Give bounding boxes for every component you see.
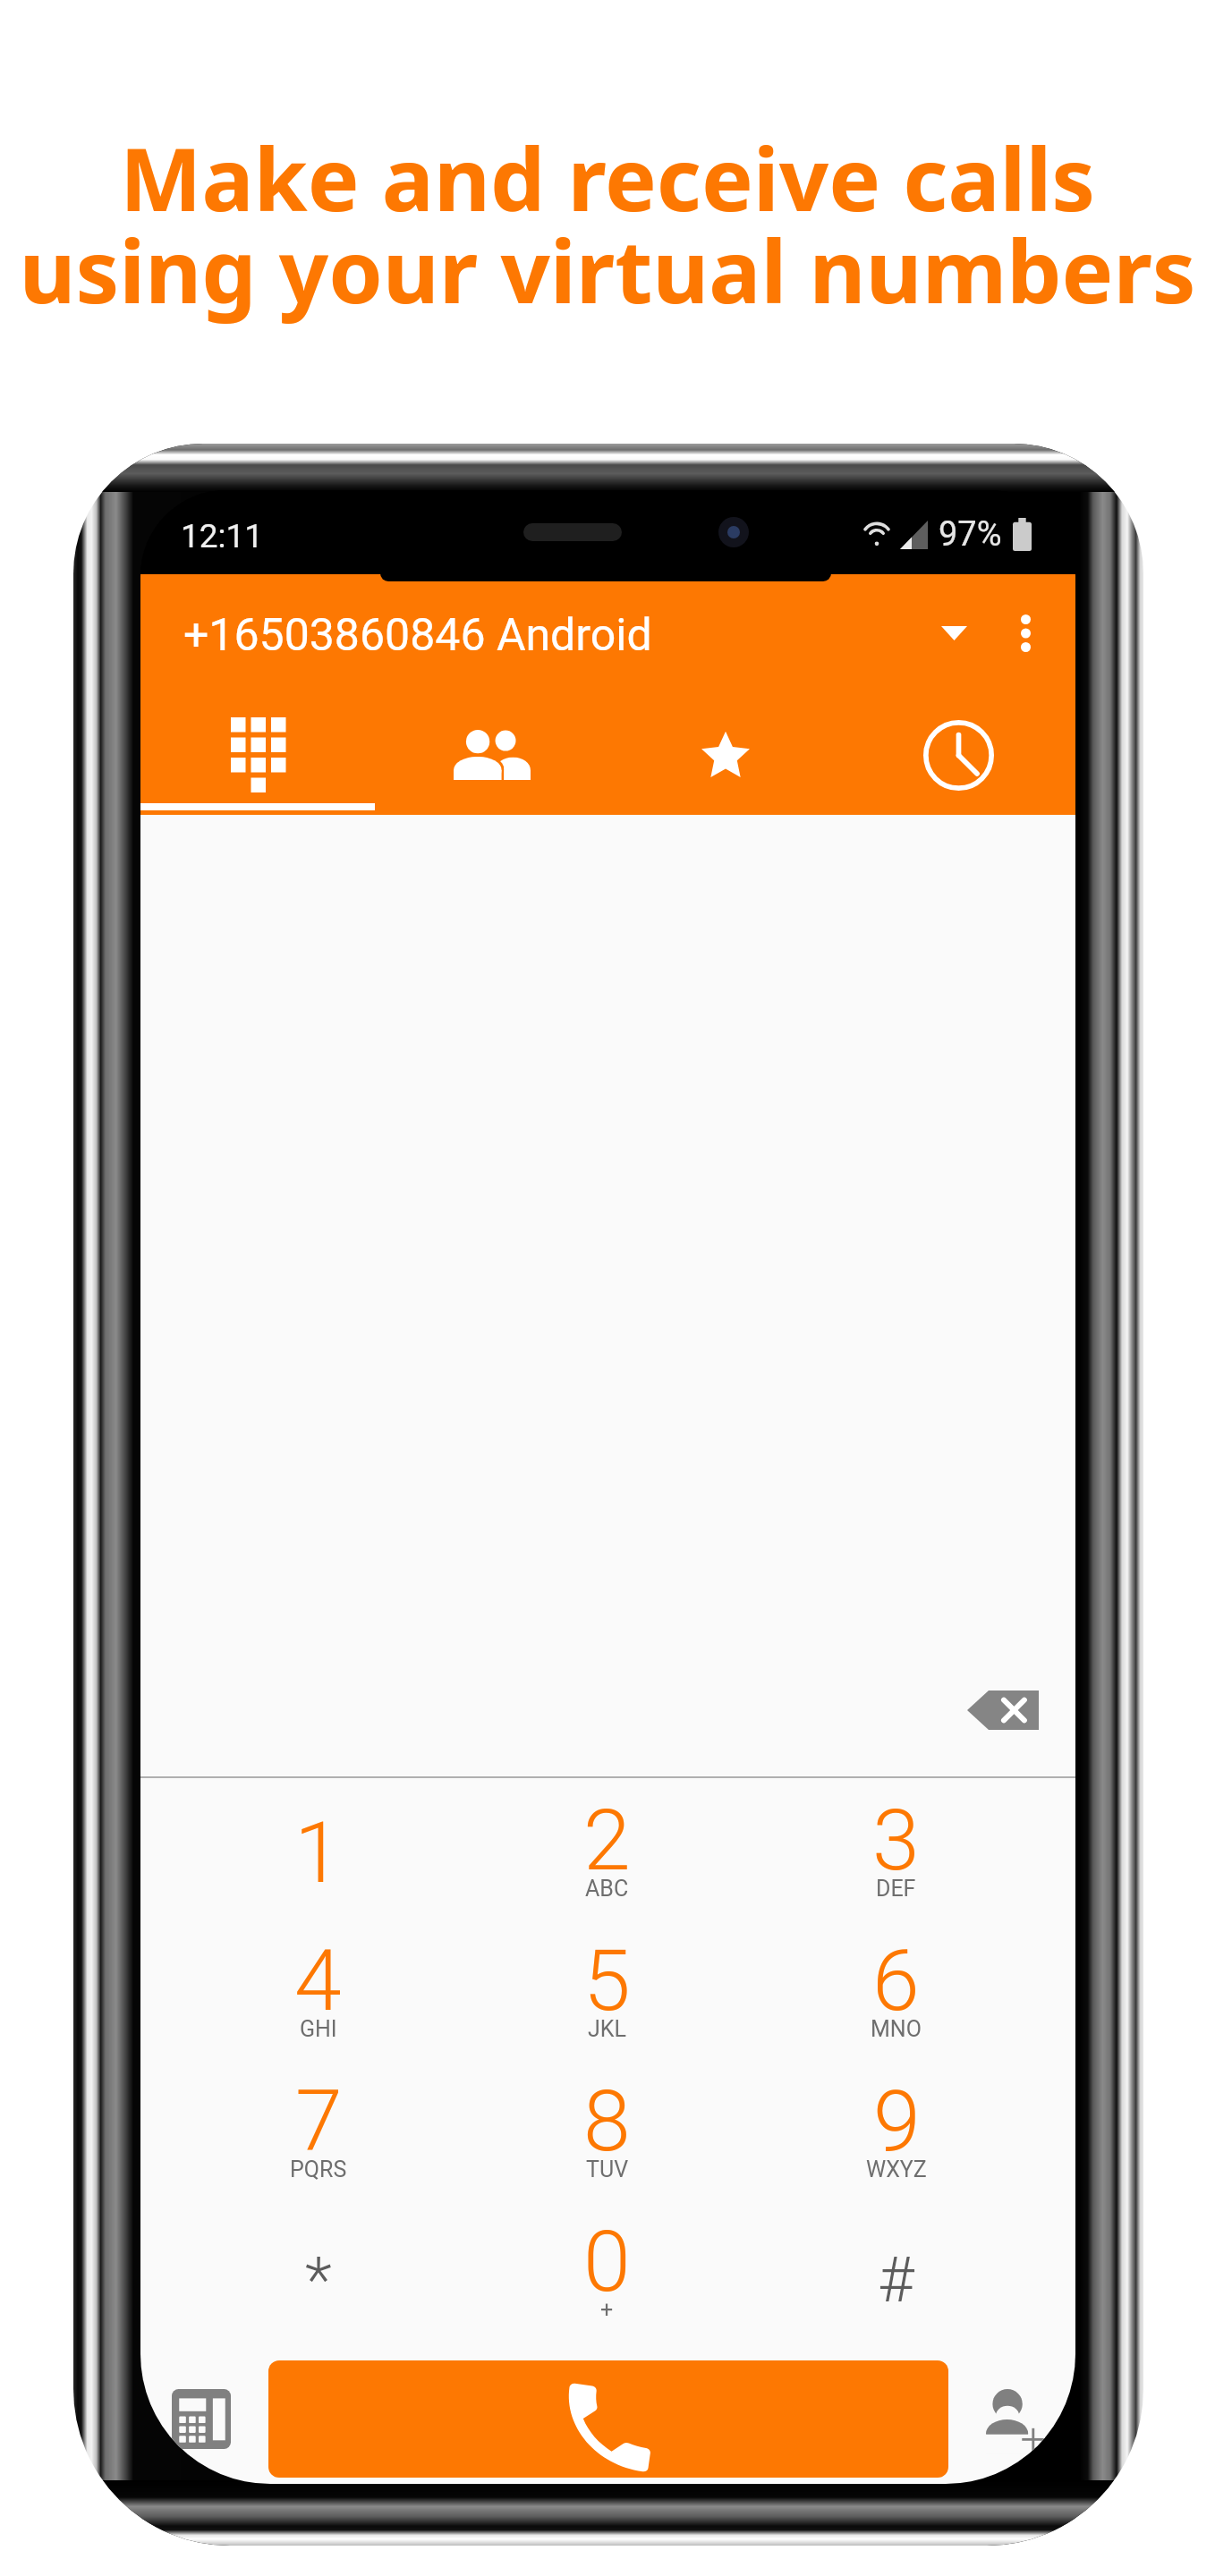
staticText: 9 xyxy=(873,2072,921,2171)
staticText: 0 xyxy=(583,2212,631,2311)
staticText: 2 xyxy=(583,1791,631,1890)
button[interactable]: Backspace xyxy=(967,1690,1039,1730)
staticText: # xyxy=(878,2243,914,2317)
staticText: 5 xyxy=(583,1931,631,2030)
staticText: 6 xyxy=(872,1931,920,2030)
button[interactable]: 1 xyxy=(174,1778,463,1919)
button[interactable]: 8 xyxy=(463,2059,752,2199)
button[interactable]: Contacts xyxy=(375,691,608,815)
button[interactable]: 7 xyxy=(174,2059,463,2199)
button[interactable]: More options xyxy=(988,596,1063,671)
button[interactable]: * xyxy=(174,2199,463,2340)
staticText: 1 xyxy=(294,1803,342,1902)
staticText: ABC xyxy=(585,1876,629,1902)
button[interactable]: 2 xyxy=(463,1778,752,1919)
staticText: 4 xyxy=(294,1931,342,2030)
staticText: +16503860846 Android xyxy=(183,609,938,662)
staticText: * xyxy=(305,2243,332,2317)
button[interactable]: 9 xyxy=(752,2059,1041,2199)
button[interactable]: Recents xyxy=(842,691,1075,815)
button[interactable]: 4 xyxy=(174,1919,463,2059)
button[interactable]: # xyxy=(752,2199,1041,2340)
button[interactable]: 3 xyxy=(752,1778,1041,1919)
button[interactable]: Keypad xyxy=(162,2379,241,2458)
button[interactable]: Choose number xyxy=(920,599,988,667)
staticText: DEF xyxy=(876,1876,916,1902)
staticText: Make and receive calls using your virtua… xyxy=(0,118,1215,328)
button[interactable]: Favorites xyxy=(608,691,842,815)
staticText: 8 xyxy=(583,2072,631,2171)
staticText: 12:11 xyxy=(181,517,264,555)
staticText: GHI xyxy=(300,2016,337,2042)
staticText: MNO xyxy=(871,2016,922,2042)
staticText: 97% xyxy=(939,514,1002,555)
staticText: 7 xyxy=(295,2072,343,2171)
staticText: TUV xyxy=(586,2157,629,2182)
button[interactable]: Dialpad xyxy=(140,691,375,815)
button[interactable]: Add contact xyxy=(976,2381,1055,2460)
button[interactable]: 5 xyxy=(463,1919,752,2059)
button[interactable]: 6 xyxy=(752,1919,1041,2059)
staticText: PQRS xyxy=(290,2157,347,2182)
button[interactable]: 0 xyxy=(463,2199,752,2340)
button[interactable]: Call xyxy=(268,2360,948,2478)
staticText: WXYZ xyxy=(866,2157,927,2182)
staticText: JKL xyxy=(588,2016,626,2042)
staticText: + xyxy=(600,2297,614,2323)
staticText: 3 xyxy=(872,1791,920,1890)
